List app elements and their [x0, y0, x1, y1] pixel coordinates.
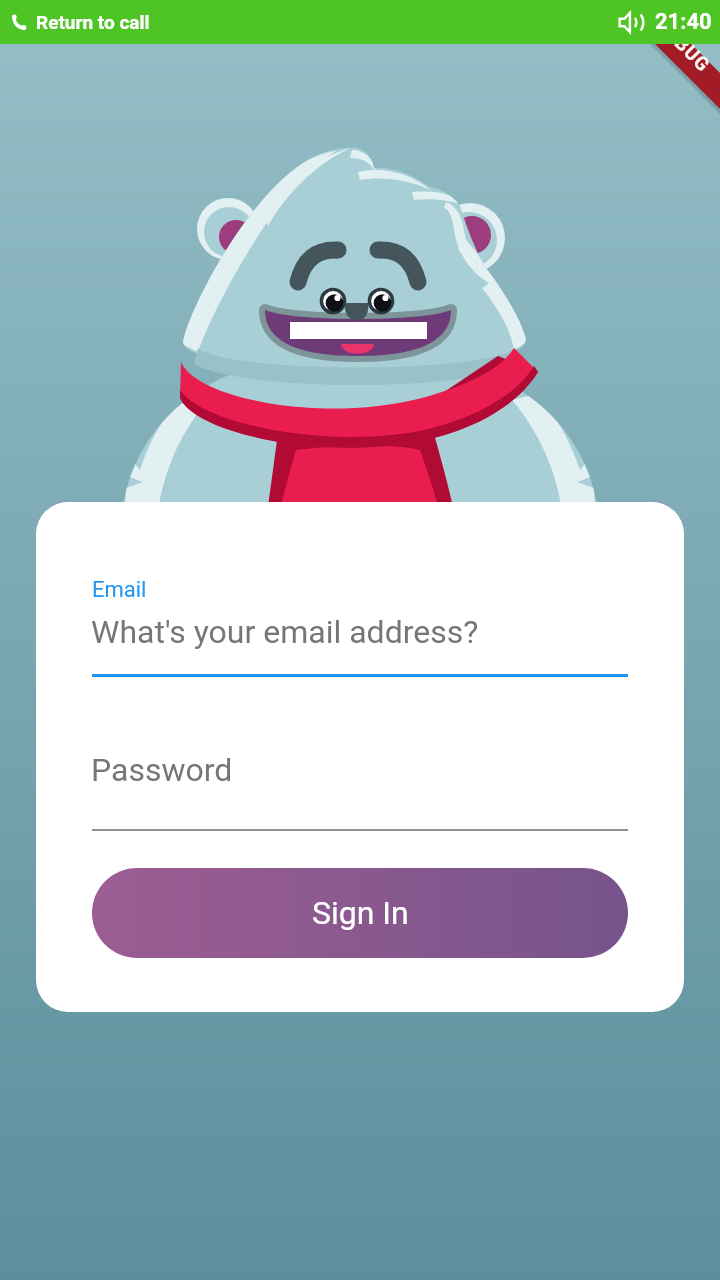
staticText: What's your email address?: [91, 613, 479, 651]
staticText: Password: [91, 751, 233, 789]
staticText: Email: [92, 577, 147, 603]
staticText: Return to call: [36, 11, 150, 33]
staticText: Sign In: [312, 894, 409, 932]
staticText: DEBUG: [653, 44, 715, 76]
staticText: 21:40: [655, 9, 712, 35]
button[interactable]: Sign In: [92, 868, 628, 958]
